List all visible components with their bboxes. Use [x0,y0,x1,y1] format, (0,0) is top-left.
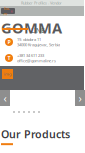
staticText: GOMMA [1,18,62,37]
button[interactable]: P [0,34,84,50]
staticText: Gom [3,6,9,16]
staticText: ‹ [3,91,6,105]
button[interactable]: T [0,50,84,66]
staticText: LINE [31,26,45,35]
button[interactable]: Gom [1,8,15,14]
staticText: T [7,54,10,62]
staticText: +381 34 611 233 [17,53,44,58]
button[interactable]: Previous slide [0,90,10,106]
staticText: 34000 Kragujevac, Serbia [17,42,60,47]
staticText: › [78,91,81,105]
staticText: 19. oktobra 11 [17,37,41,42]
staticText: x [10,8,12,14]
staticText: img [4,71,11,77]
staticText: Rubber Profiles - Vendor [21,0,62,6]
staticText: P [7,38,10,46]
staticText: office@gommaline.rs [17,58,56,63]
staticText: Our Products [1,127,70,141]
button[interactable]: Next slide [75,90,85,106]
